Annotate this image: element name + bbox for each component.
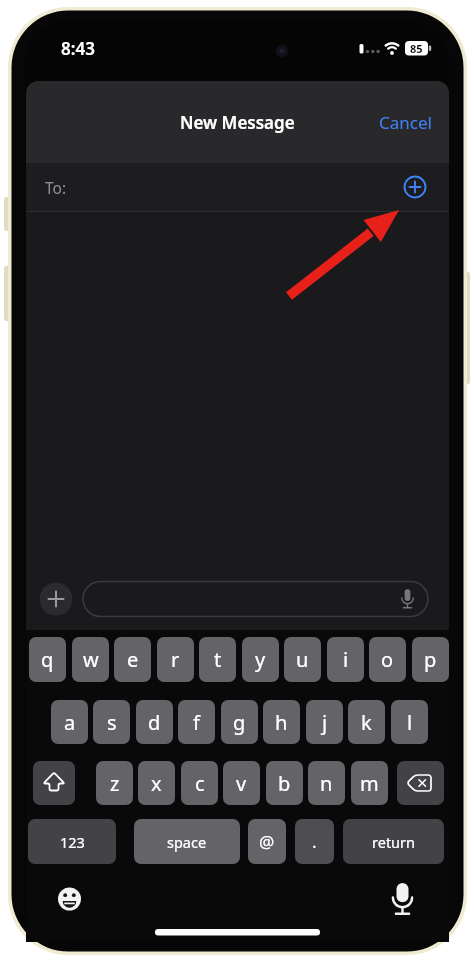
- button[interactable]: n: [308, 761, 345, 805]
- staticText: q: [41, 646, 54, 673]
- staticText: c: [195, 770, 205, 797]
- button[interactable]: m: [351, 761, 388, 805]
- button[interactable]: b: [266, 761, 303, 805]
- button[interactable]: k: [348, 700, 385, 744]
- staticText: o: [381, 646, 394, 673]
- staticText: l: [407, 709, 413, 736]
- staticText: f: [193, 709, 200, 736]
- staticText: t: [214, 646, 222, 673]
- staticText: New Message: [180, 111, 295, 134]
- button[interactable]: [397, 761, 444, 805]
- button[interactable]: i: [327, 637, 364, 682]
- button[interactable]: f: [178, 700, 215, 744]
- staticText: x: [151, 770, 162, 797]
- button[interactable]: return: [343, 819, 444, 864]
- button[interactable]: j: [306, 700, 343, 744]
- staticText: i: [343, 646, 349, 673]
- button[interactable]: s: [93, 700, 130, 744]
- button[interactable]: p: [412, 637, 449, 682]
- button[interactable]: [39, 582, 73, 616]
- staticText: h: [275, 709, 288, 736]
- staticText: y: [255, 646, 266, 673]
- button[interactable]: x: [138, 761, 175, 805]
- button[interactable]: To:: [26, 163, 449, 211]
- staticText: p: [424, 646, 437, 673]
- button[interactable]: q: [29, 637, 66, 682]
- staticText: 85: [410, 41, 423, 56]
- staticText: s: [107, 709, 117, 736]
- button[interactable]: y: [242, 637, 279, 682]
- staticText: a: [64, 709, 76, 736]
- button[interactable]: u: [284, 637, 321, 682]
- staticText: b: [278, 770, 291, 797]
- staticText: n: [320, 770, 333, 797]
- staticText: d: [148, 709, 161, 736]
- button[interactable]: [83, 581, 428, 617]
- staticText: To:: [45, 177, 67, 198]
- button[interactable]: c: [181, 761, 218, 805]
- button[interactable]: Cancel: [379, 111, 432, 134]
- button[interactable]: d: [136, 700, 173, 744]
- button[interactable]: .: [295, 819, 334, 864]
- button[interactable]: [403, 175, 427, 199]
- staticText: space: [167, 832, 207, 852]
- button[interactable]: [388, 880, 418, 914]
- button[interactable]: space: [134, 819, 240, 864]
- button[interactable]: [33, 761, 75, 805]
- button[interactable]: v: [223, 761, 260, 805]
- button[interactable]: [55, 884, 85, 914]
- button[interactable]: r: [157, 637, 194, 682]
- button[interactable]: @: [248, 819, 286, 864]
- button[interactable]: h: [263, 700, 300, 744]
- button[interactable]: z: [96, 761, 133, 805]
- staticText: r: [171, 646, 180, 673]
- button[interactable]: 123: [28, 819, 116, 864]
- button[interactable]: t: [199, 637, 236, 682]
- staticText: k: [361, 709, 372, 736]
- button[interactable]: e: [114, 637, 151, 682]
- button[interactable]: a: [51, 700, 88, 744]
- staticText: m: [360, 770, 379, 797]
- button[interactable]: o: [369, 637, 406, 682]
- staticText: g: [233, 709, 246, 736]
- staticText: j: [322, 709, 328, 736]
- staticText: w: [83, 646, 99, 673]
- staticText: .: [312, 830, 317, 853]
- staticText: v: [236, 770, 247, 797]
- staticText: z: [110, 770, 120, 797]
- staticText: 8:43: [61, 37, 95, 56]
- button[interactable]: g: [221, 700, 258, 744]
- button[interactable]: w: [72, 637, 109, 682]
- staticText: e: [127, 646, 139, 673]
- staticText: @: [259, 830, 275, 853]
- staticText: Cancel: [379, 111, 432, 134]
- button[interactable]: l: [391, 700, 428, 744]
- staticText: return: [372, 832, 416, 852]
- staticText: 123: [60, 832, 85, 852]
- staticText: u: [296, 646, 309, 673]
